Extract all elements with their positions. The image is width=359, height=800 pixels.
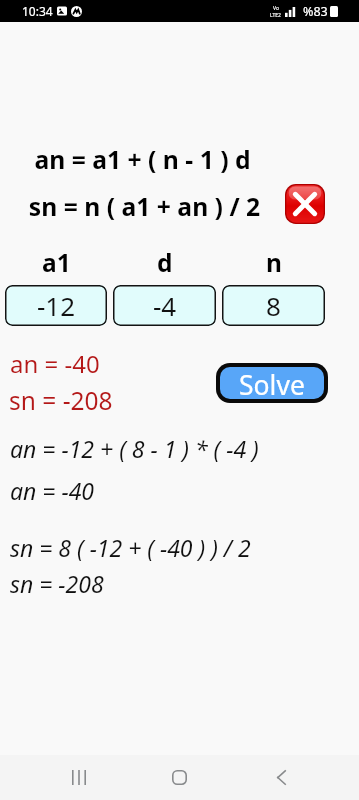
staticText: 10:34 — [22, 3, 53, 19]
button[interactable]: 8 — [222, 285, 325, 326]
staticText: an = -12 + ( 8 - 1 ) * ( -4 ) — [10, 433, 259, 464]
button[interactable]: Back — [261, 757, 301, 797]
staticText: d — [157, 246, 173, 279]
staticText: sn = -208 — [9, 384, 113, 417]
staticText: Solve — [239, 367, 305, 399]
staticText: %83 — [303, 3, 328, 20]
button[interactable]: Home — [159, 757, 199, 797]
staticText: -4 — [153, 288, 177, 323]
staticText: an = -40 — [10, 475, 95, 506]
staticText: 8 — [266, 288, 281, 323]
button[interactable]: Recents — [59, 757, 99, 797]
button[interactable]: -4 — [113, 285, 216, 326]
staticText: an = -40 — [10, 347, 100, 380]
staticText: -12 — [37, 288, 76, 323]
staticText: an = a1 + ( n - 1 ) d — [0, 143, 285, 177]
staticText: n — [266, 246, 282, 279]
staticText: sn = 8 ( -12 + ( -40 ) ) / 2 — [10, 532, 251, 563]
staticText: Vo — [273, 5, 279, 12]
button[interactable]: Clear — [285, 184, 325, 224]
button[interactable]: -12 — [5, 285, 107, 326]
staticText: a1 — [42, 246, 71, 279]
staticText: sn = n ( a1 + an ) / 2 — [0, 190, 289, 224]
staticText: sn = -208 — [10, 568, 104, 599]
button[interactable]: Solve — [220, 367, 324, 399]
staticText: LTE2 — [270, 12, 281, 19]
